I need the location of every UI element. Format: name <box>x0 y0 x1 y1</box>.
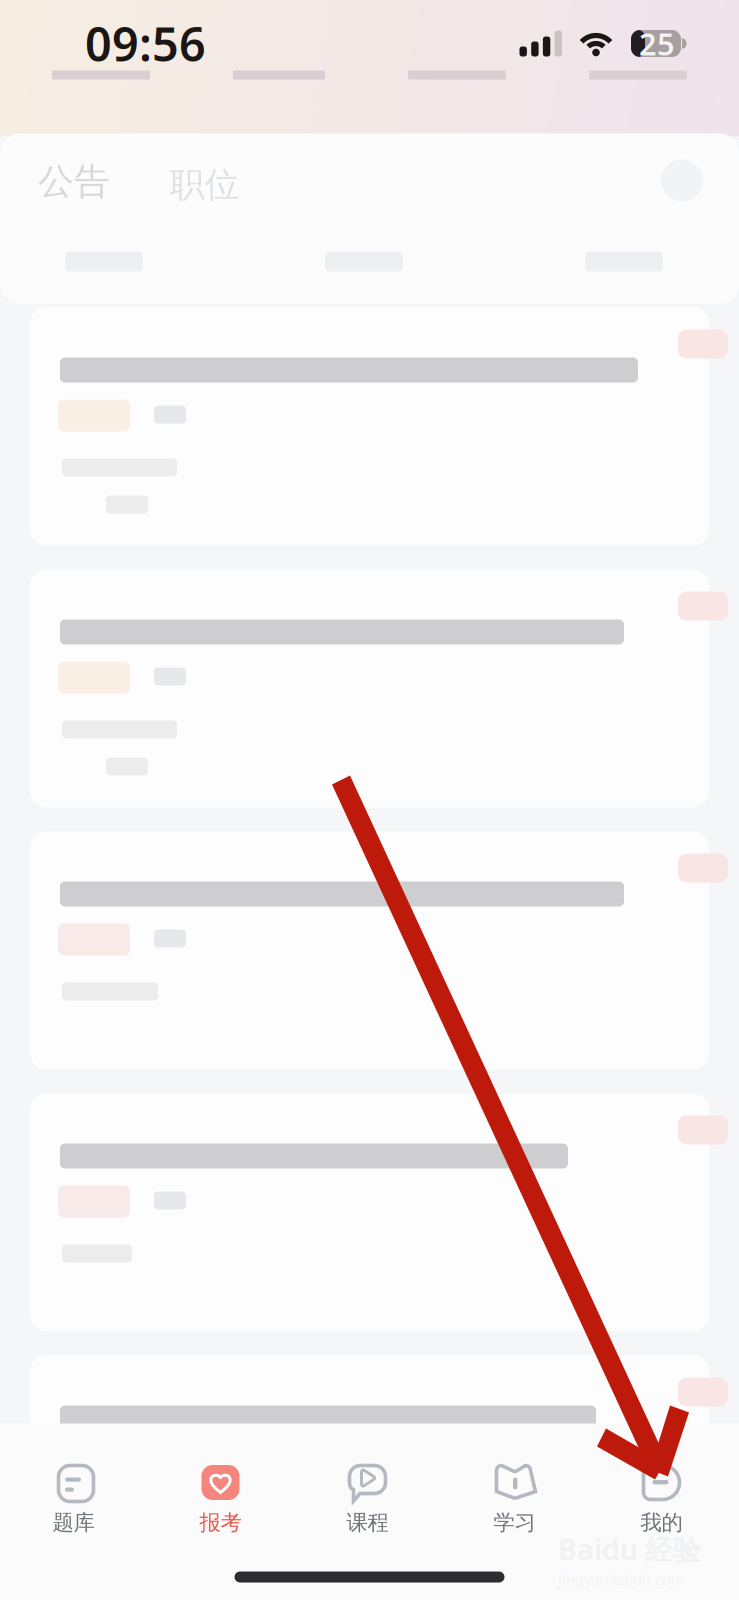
button[interactable] <box>30 1093 709 1331</box>
button[interactable] <box>30 1355 709 1593</box>
button[interactable]: 题库 <box>0 1423 147 1573</box>
staticText: 课程 <box>346 1509 388 1536</box>
button[interactable] <box>30 831 709 1069</box>
staticText: 我的 <box>640 1509 682 1536</box>
button[interactable]: 报考 <box>147 1423 294 1573</box>
staticText: 题库 <box>52 1509 94 1536</box>
button[interactable] <box>30 307 709 545</box>
button[interactable]: 公告 <box>38 159 110 204</box>
staticText: 09:56 <box>85 12 206 74</box>
staticText: 公告 <box>38 159 110 204</box>
button[interactable] <box>30 569 709 807</box>
button[interactable]: 我的 <box>588 1423 735 1573</box>
staticText: 职位 <box>170 163 240 206</box>
button[interactable]: 学习 <box>441 1423 588 1573</box>
staticText: 学习 <box>493 1509 535 1536</box>
staticText: 25 <box>639 23 675 64</box>
button[interactable]: 课程 <box>294 1423 441 1573</box>
button[interactable]: 职位 <box>170 163 240 206</box>
staticText: Baidu 经验 <box>558 1530 701 1568</box>
staticText: 报考 <box>199 1509 241 1536</box>
button[interactable]: Search <box>661 159 703 201</box>
